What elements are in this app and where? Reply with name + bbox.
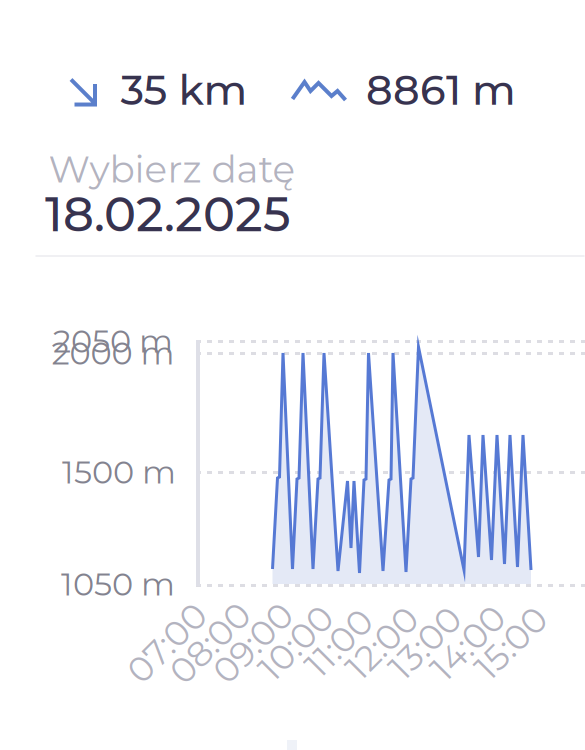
staticText: 35 km xyxy=(120,65,247,115)
staticText: 18.02.2025 xyxy=(45,185,291,243)
staticText: 2000 m xyxy=(51,333,174,372)
staticText: 08:00 xyxy=(161,622,259,664)
staticText: 09:00 xyxy=(204,622,301,664)
staticText: 13:00 xyxy=(382,622,468,664)
staticText: 8861 m xyxy=(366,65,516,115)
staticText: 11:00 xyxy=(299,622,378,664)
staticText: 10:00 xyxy=(251,622,340,664)
staticText: 1500 m xyxy=(62,452,176,491)
staticText: Wybierz datę xyxy=(48,146,295,192)
staticText: 12:00 xyxy=(339,622,425,664)
staticText: 15:00 xyxy=(468,622,554,664)
staticText: 2050 m xyxy=(53,321,173,360)
staticText: 14:00 xyxy=(423,622,512,664)
staticText: 07:00 xyxy=(119,622,215,664)
staticText: 1050 m xyxy=(61,564,175,603)
